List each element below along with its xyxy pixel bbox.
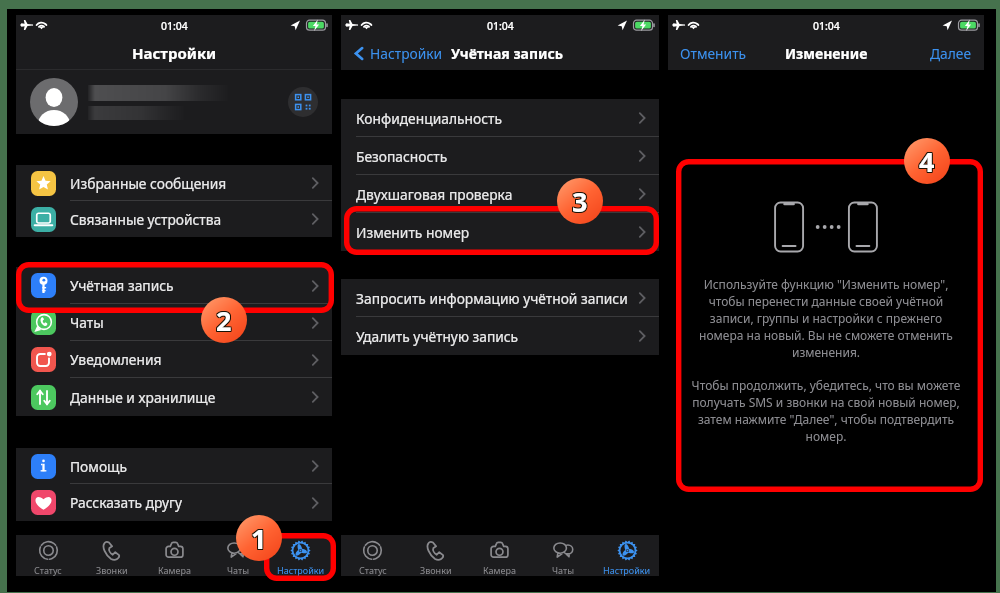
button[interactable]: Отменить	[680, 44, 747, 63]
button[interactable]: Учётная запись	[16, 267, 332, 304]
staticText: 1	[250, 521, 266, 558]
button[interactable]: Конфиденциальность	[341, 99, 659, 137]
staticText: 2	[216, 302, 232, 339]
staticText: 4	[918, 142, 934, 179]
staticText: 4	[920, 143, 936, 180]
staticText: Двухшаговая проверка	[356, 185, 513, 204]
staticText: Чаты	[552, 564, 574, 576]
staticText: 2	[217, 303, 233, 340]
staticText: 01:04	[161, 19, 188, 33]
staticText: 4	[919, 144, 935, 181]
button[interactable]: Данные и хранилище	[16, 378, 332, 416]
staticText: 2	[215, 301, 231, 338]
button[interactable]: Чаты	[206, 535, 269, 576]
staticText: 4	[918, 144, 934, 181]
button[interactable]: Камера	[467, 535, 531, 576]
staticText: Настройки	[370, 44, 443, 63]
staticText: 4	[919, 143, 935, 180]
staticText: Используйте функцию "Изменить номер", чт…	[688, 276, 964, 361]
staticText: 01:04	[487, 19, 514, 33]
button[interactable]: Чаты	[531, 535, 595, 576]
staticText: Помощь	[70, 457, 127, 476]
staticText: Далее	[930, 44, 972, 63]
staticText: Учётная запись	[451, 44, 564, 63]
button[interactable]: Уведомления	[16, 341, 332, 378]
staticText: Уведомления	[70, 350, 162, 369]
button[interactable]: Связанные устройства	[16, 201, 332, 237]
staticText: Настройки	[132, 43, 217, 63]
staticText: 4	[918, 143, 934, 180]
staticText: 4	[920, 142, 936, 179]
button[interactable]: QR code	[16, 70, 332, 134]
staticText: Изменить номер	[356, 223, 470, 242]
button[interactable]: Изменить номер	[341, 213, 659, 251]
staticText: Чаты	[227, 564, 249, 576]
button[interactable]: Настройки	[269, 535, 332, 576]
staticText: 3	[572, 183, 588, 220]
staticText: 1	[251, 519, 267, 556]
button[interactable]: Безопасность	[341, 137, 659, 175]
staticText: Конфиденциальность	[356, 109, 502, 128]
staticText: Звонки	[96, 564, 128, 576]
staticText: 1	[252, 519, 268, 556]
button[interactable]: Удалить учётную запись	[341, 317, 659, 355]
staticText: Изменение	[785, 44, 868, 63]
staticText: Камера	[158, 564, 191, 576]
staticText: Данные и хранилище	[70, 388, 216, 407]
button[interactable]: Двухшаговая проверка	[341, 175, 659, 213]
button[interactable]: Далее	[930, 44, 972, 63]
staticText: 3	[571, 182, 587, 219]
staticText: 3	[573, 184, 589, 221]
staticText: 2	[217, 302, 233, 339]
staticText: Отменить	[680, 44, 747, 63]
button[interactable]: Чаты	[16, 304, 332, 341]
button[interactable]: Избранные сообщения	[16, 165, 332, 201]
staticText: 2	[216, 301, 232, 338]
staticText: 2	[215, 302, 231, 339]
staticText: 2	[215, 303, 231, 340]
button[interactable]: Рассказать другу	[16, 484, 332, 521]
staticText: Избранные сообщения	[70, 174, 227, 193]
staticText: Камера	[483, 564, 516, 576]
button[interactable]: Запросить информацию учётной записи	[341, 279, 659, 317]
staticText: Удалить учётную запись	[356, 327, 519, 346]
staticText: 3	[572, 182, 588, 219]
staticText: 1	[250, 520, 266, 557]
staticText: 2	[217, 301, 233, 338]
staticText: 1	[251, 520, 267, 557]
button[interactable]: Статус	[341, 535, 404, 576]
staticText: 01:04	[813, 19, 840, 33]
button[interactable]: QR code	[288, 87, 318, 117]
staticText: Запросить информацию учётной записи	[356, 289, 628, 308]
staticText: 3	[573, 183, 589, 220]
staticText: Учётная запись	[70, 276, 174, 295]
button[interactable]: Помощь	[16, 448, 332, 484]
staticText: 3	[573, 182, 589, 219]
staticText: Статус	[359, 564, 387, 576]
button[interactable]: Камера	[143, 535, 206, 576]
staticText: 3	[571, 183, 587, 220]
staticText: 1	[252, 520, 268, 557]
button[interactable]: Звонки	[404, 535, 467, 576]
staticText: 3	[572, 184, 588, 221]
button[interactable]: Настройки	[352, 44, 443, 63]
button[interactable]: Статус	[16, 535, 80, 576]
staticText: Чтобы продолжить, убедитесь, что вы може…	[688, 377, 964, 445]
button[interactable]: Настройки	[595, 535, 659, 576]
staticText: 1	[251, 521, 267, 558]
staticText: Настройки	[277, 564, 325, 576]
staticText: Связанные устройства	[70, 210, 222, 229]
staticText: 4	[920, 144, 936, 181]
staticText: Чаты	[70, 313, 104, 332]
staticText: Безопасность	[356, 147, 448, 166]
button[interactable]: Звонки	[80, 535, 143, 576]
staticText: Настройки	[603, 564, 651, 576]
staticText: 4	[919, 142, 935, 179]
staticText: Рассказать другу	[70, 493, 183, 512]
staticText: 2	[216, 303, 232, 340]
staticText: 1	[250, 519, 266, 556]
staticText: 3	[571, 184, 587, 221]
staticText: Статус	[34, 564, 62, 576]
staticText: Звонки	[420, 564, 452, 576]
staticText: 1	[252, 521, 268, 558]
